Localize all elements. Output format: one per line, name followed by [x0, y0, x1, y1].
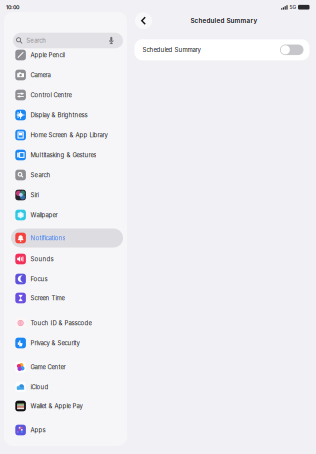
- button[interactable]: Siri: [11, 185, 123, 204]
- staticText: Home Screen & App Library: [30, 131, 107, 139]
- button[interactable]: Touch ID & Passcode: [11, 313, 123, 332]
- button[interactable]: Game Center: [11, 357, 123, 376]
- button[interactable]: Control Centre: [11, 85, 123, 104]
- button[interactable]: Wallpaper: [11, 205, 123, 224]
- staticText: Game Center: [30, 363, 65, 371]
- staticText: Control Centre: [30, 91, 71, 99]
- button[interactable]: Back: [135, 12, 152, 29]
- staticText: Scheduled Summary: [142, 46, 200, 53]
- staticText: Focus: [30, 275, 47, 283]
- staticText: Sounds: [30, 255, 53, 263]
- staticText: iCloud: [30, 383, 48, 391]
- staticText: Wallpaper: [30, 211, 57, 219]
- button[interactable]: iCloud: [11, 377, 123, 396]
- button[interactable]: Home Screen & App Library: [11, 125, 123, 144]
- button[interactable]: Apps: [11, 420, 123, 439]
- staticText: Siri: [30, 191, 38, 199]
- staticText: Scheduled Summary: [190, 17, 257, 24]
- button[interactable]: Sounds: [11, 249, 123, 268]
- staticText: Camera: [30, 71, 50, 79]
- staticText: Search: [30, 171, 50, 179]
- button[interactable]: Scheduled Summary: [280, 44, 303, 55]
- button[interactable]: Screen Time: [11, 288, 123, 307]
- staticText: Wallet & Apple Pay: [30, 402, 82, 410]
- staticText: Apps: [30, 426, 45, 434]
- button[interactable]: Camera: [11, 65, 123, 84]
- button[interactable]: Search: [11, 165, 123, 184]
- button[interactable]: Notifications: [11, 228, 123, 247]
- staticText: Multitasking & Gestures: [30, 151, 96, 159]
- staticText: Privacy & Security: [30, 339, 79, 347]
- staticText: 10:00: [6, 4, 19, 10]
- button[interactable]: Multitasking & Gestures: [11, 145, 123, 164]
- staticText: Touch ID & Passcode: [30, 319, 91, 327]
- button[interactable]: Focus: [11, 269, 123, 288]
- staticText: Display & Brightness: [30, 111, 87, 119]
- staticText: Search: [26, 37, 46, 44]
- staticText: Notifications: [30, 234, 65, 242]
- staticText: Apple Pencil: [30, 51, 64, 59]
- button[interactable]: Apple Pencil: [11, 45, 123, 64]
- button[interactable]: Display & Brightness: [11, 105, 123, 124]
- staticText: 5G: [289, 4, 296, 10]
- staticText: Screen Time: [30, 294, 64, 302]
- button[interactable]: Privacy & Security: [11, 333, 123, 352]
- button[interactable]: Search: [13, 33, 123, 48]
- button[interactable]: Wallet & Apple Pay: [11, 396, 123, 415]
